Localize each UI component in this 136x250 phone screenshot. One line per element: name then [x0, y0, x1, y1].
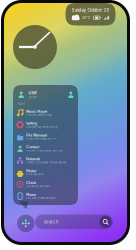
button[interactable]: Setting	[13, 119, 78, 131]
staticText: Call your friends and family	[26, 197, 56, 200]
staticText: See your friends contact and friend	[26, 149, 62, 152]
staticText: Connect to the global internet network	[26, 161, 66, 164]
button[interactable]: Apps	[17, 215, 34, 232]
staticText: Network	[26, 157, 40, 161]
staticText: Apps	[17, 102, 24, 105]
staticText: Clock	[26, 181, 36, 185]
button[interactable]: Contact	[13, 143, 78, 154]
staticText: Play your favourite song	[26, 113, 51, 116]
staticText: Music Player	[26, 109, 47, 113]
button[interactable]: Phone	[13, 190, 78, 202]
staticText: Sunday, October 20	[71, 8, 109, 13]
staticText: Phone	[26, 193, 36, 197]
button[interactable]: Network	[13, 154, 78, 166]
staticText: Setting	[26, 121, 37, 125]
staticText: File Manager	[26, 133, 47, 137]
staticText: Configure your system setting	[26, 125, 57, 128]
staticText: Printer	[26, 169, 36, 173]
staticText: 20°C	[82, 16, 91, 20]
button[interactable]: Clock	[13, 178, 78, 190]
staticText: See and set your alarm	[26, 185, 50, 188]
button[interactable]: User	[13, 87, 78, 102]
button[interactable]: Music Player	[13, 107, 78, 119]
staticText: Print your work	[26, 173, 43, 176]
staticText: Contact	[26, 145, 39, 149]
staticText: search	[44, 219, 59, 224]
staticText: @user	[28, 95, 37, 98]
button[interactable]: search	[35, 215, 113, 229]
button[interactable]: Printer	[13, 166, 78, 178]
staticText: Browse and manage your file	[26, 137, 56, 140]
staticText: User	[28, 90, 37, 95]
button[interactable]: File Manager	[13, 131, 78, 143]
